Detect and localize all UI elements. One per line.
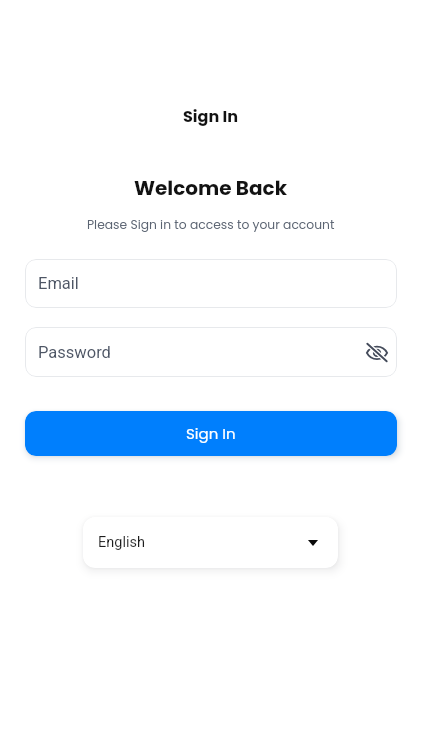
button[interactable]: Sign In: [25, 411, 397, 456]
button[interactable]: Email: [25, 259, 397, 308]
staticText: Sign In: [183, 105, 239, 127]
staticText: English: [98, 534, 145, 551]
button[interactable]: Show password: [362, 337, 392, 367]
button[interactable]: Password: [25, 327, 397, 377]
staticText: Email: [38, 274, 79, 293]
staticText: Sign In: [186, 423, 236, 444]
staticText: Please Sign in to access to your account: [87, 216, 335, 233]
staticText: Welcome Back: [134, 174, 288, 202]
staticText: Password: [38, 343, 111, 362]
other: Toggle password visibility: [366, 343, 388, 362]
button[interactable]: English: [83, 517, 338, 568]
